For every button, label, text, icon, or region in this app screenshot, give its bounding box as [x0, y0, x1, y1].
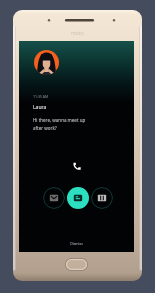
- staticText: Laura: [33, 104, 47, 111]
- staticText: moto: [71, 30, 84, 37]
- button[interactable]: Home: [65, 258, 88, 271]
- button[interactable]: Dismiss: [62, 240, 91, 247]
- staticText: 11:35 AM: [33, 94, 49, 99]
- button[interactable]: Calendar: [91, 187, 113, 209]
- button[interactable]: Message: [43, 187, 65, 209]
- button[interactable]: Laura avatar: [34, 50, 59, 75]
- button[interactable]: Call: [71, 160, 83, 172]
- staticText: Hi there, wanna meet up after work?: [33, 117, 86, 132]
- staticText: Dismiss: [70, 241, 83, 246]
- button[interactable]: Reply: [67, 187, 89, 209]
